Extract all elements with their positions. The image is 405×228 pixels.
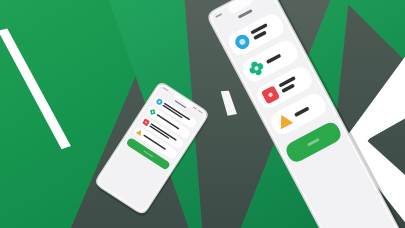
button[interactable]: App preview banner — [0, 0, 405, 228]
